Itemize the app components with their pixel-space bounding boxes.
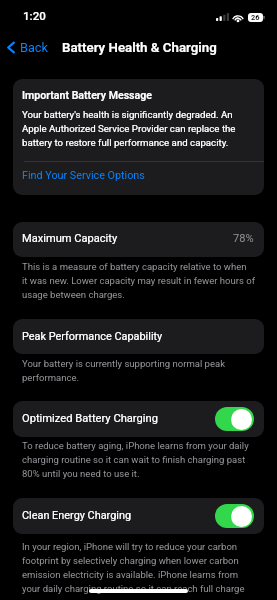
button[interactable] (2, 36, 58, 58)
staticText: Your battery is currently supporting nor… (22, 358, 225, 383)
staticText: Maximum Capacity (22, 232, 118, 245)
staticText: 78% (233, 232, 254, 245)
staticText: Optimized Battery Charging (22, 412, 158, 425)
staticText: Important Battery Message (22, 89, 152, 101)
staticText: Your battery's health is significantly d… (22, 109, 236, 148)
button[interactable] (13, 163, 264, 194)
staticText: This is a measure of battery capacity re… (22, 261, 255, 300)
staticText: Find Your Service Options (22, 169, 145, 182)
staticText: In your region, iPhone will try to reduc… (22, 541, 245, 594)
staticText: 26 (251, 13, 260, 22)
staticText: Back (20, 40, 48, 55)
button[interactable] (13, 498, 264, 534)
staticText: Peak Performance Capability (22, 330, 163, 343)
staticText: Clean Energy Charging (22, 509, 132, 522)
staticText: To reduce battery aging, iPhone learns f… (22, 440, 249, 479)
staticText: 1:20 (23, 9, 46, 23)
button[interactable] (13, 401, 264, 437)
button[interactable] (13, 319, 264, 354)
button[interactable]: Optimized Battery Charging (215, 407, 254, 431)
button[interactable] (13, 222, 264, 257)
staticText: Battery Health & Charging (62, 40, 217, 56)
button[interactable]: Clean Energy Charging (215, 504, 254, 528)
